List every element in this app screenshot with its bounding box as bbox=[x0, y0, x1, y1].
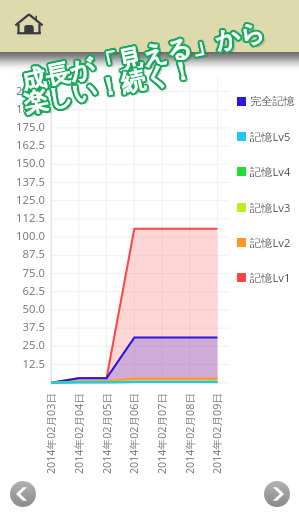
staticText: 成長が「見える」から bbox=[21, 16, 270, 98]
staticText: 2014年02月07日 bbox=[155, 393, 170, 474]
staticText: 成長が「見える」から bbox=[20, 15, 269, 96]
staticText: 162.5 bbox=[0, 137, 45, 152]
staticText: 楽しい！続く！ bbox=[23, 54, 199, 120]
staticText: 成長が「見える」から bbox=[22, 18, 271, 99]
staticText: 成長が「見える」から bbox=[18, 16, 268, 97]
staticText: 87.5 bbox=[0, 246, 45, 261]
staticText: 成長が「見える」から bbox=[20, 18, 269, 99]
staticText: 200.0 bbox=[0, 83, 45, 98]
staticText: 150.0 bbox=[0, 155, 45, 170]
staticText: 楽しい！続く！ bbox=[22, 55, 199, 121]
staticText: 記憶Lv4 bbox=[250, 164, 291, 179]
staticText: 楽しい！続く！ bbox=[19, 55, 196, 121]
staticText: 楽しい！続く！ bbox=[22, 52, 199, 118]
staticText: 楽しい！続く！ bbox=[18, 53, 195, 119]
staticText: 2014年02月09日 bbox=[210, 393, 225, 474]
staticText: 成長が「見える」から bbox=[18, 14, 267, 95]
staticText: 100.0 bbox=[0, 228, 45, 243]
staticText: 記憶Lv3 bbox=[250, 200, 291, 215]
staticText: 楽しい！続く！ bbox=[20, 56, 197, 122]
staticText: 楽しい！続く！ bbox=[19, 54, 195, 120]
staticText: 楽しい！続く！ bbox=[21, 51, 198, 117]
button[interactable]: Previous bbox=[10, 481, 36, 507]
staticText: 112.5 bbox=[0, 210, 45, 225]
staticText: 2014年02月08日 bbox=[183, 393, 198, 474]
staticText: 25.0 bbox=[0, 337, 45, 352]
staticText: 成長が「見える」から bbox=[16, 15, 265, 96]
staticText: 成長が「見える」から bbox=[19, 14, 268, 95]
staticText: 2014年02月06日 bbox=[127, 393, 142, 474]
staticText: 完全記憶 bbox=[250, 94, 295, 108]
staticText: 137.5 bbox=[0, 174, 45, 189]
button[interactable]: Next bbox=[264, 481, 290, 507]
staticText: 成長が「見える」から bbox=[16, 16, 266, 97]
staticText: 楽しい！続く！ bbox=[20, 52, 197, 117]
staticText: 楽しい！続く！ bbox=[21, 53, 197, 119]
button[interactable]: Home bbox=[15, 13, 43, 35]
staticText: 記憶Lv2 bbox=[250, 235, 291, 250]
staticText: 成長が「見える」から bbox=[20, 16, 269, 97]
staticText: 2014年02月03日 bbox=[44, 393, 59, 474]
staticText: 成長が「見える」から bbox=[19, 18, 268, 99]
staticText: 187.5 bbox=[0, 101, 45, 116]
staticText: 175.0 bbox=[0, 119, 45, 134]
staticText: 成長が「見える」から bbox=[17, 17, 266, 98]
staticText: 125.0 bbox=[0, 192, 45, 207]
staticText: 楽しい！続く！ bbox=[23, 53, 199, 119]
staticText: 62.5 bbox=[0, 283, 45, 298]
staticText: 成長が「見える」から bbox=[17, 14, 266, 95]
staticText: 楽しい！続く！ bbox=[19, 52, 196, 118]
staticText: 記憶Lv1 bbox=[250, 270, 291, 285]
staticText: 成長が「見える」から bbox=[18, 18, 267, 99]
staticText: 37.5 bbox=[0, 319, 45, 334]
staticText: 50.0 bbox=[0, 301, 45, 316]
staticText: 2014年02月04日 bbox=[72, 393, 87, 474]
staticText: 楽しい！続く！ bbox=[24, 56, 201, 122]
staticText: 2014年02月05日 bbox=[100, 393, 115, 474]
staticText: 楽しい！続く！ bbox=[21, 55, 198, 121]
staticText: 12.5 bbox=[0, 356, 45, 371]
staticText: 75.0 bbox=[0, 265, 45, 280]
staticText: 記憶Lv5 bbox=[250, 129, 291, 144]
